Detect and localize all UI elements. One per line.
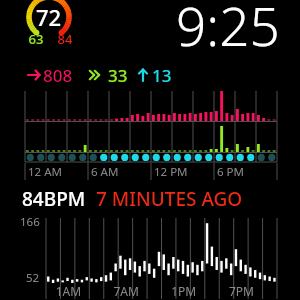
- button[interactable]: Activity watch face: [0, 0, 300, 300]
